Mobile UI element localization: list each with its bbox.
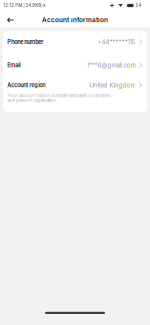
staticText: l***6@gmail.com [87, 62, 135, 69]
button[interactable]: Phone number [3, 31, 147, 53]
button[interactable]: Email [3, 53, 147, 77]
staticText: United Kingdom [89, 82, 135, 89]
button[interactable]: Back [0, 12, 17, 27]
staticText: Email [7, 62, 20, 69]
staticText: 12:12 PM | 34.9KB/s [3, 3, 45, 8]
button[interactable]: Account region [3, 77, 147, 93]
staticText: Account region [7, 82, 45, 89]
staticText: Account information [42, 16, 108, 24]
staticText: Your account region is initially set bas… [7, 93, 110, 98]
staticText: 54 [135, 3, 141, 8]
staticText: and place of registration. [7, 98, 57, 103]
staticText: +44******115 [97, 38, 135, 46]
staticText: Phone number [7, 39, 43, 45]
